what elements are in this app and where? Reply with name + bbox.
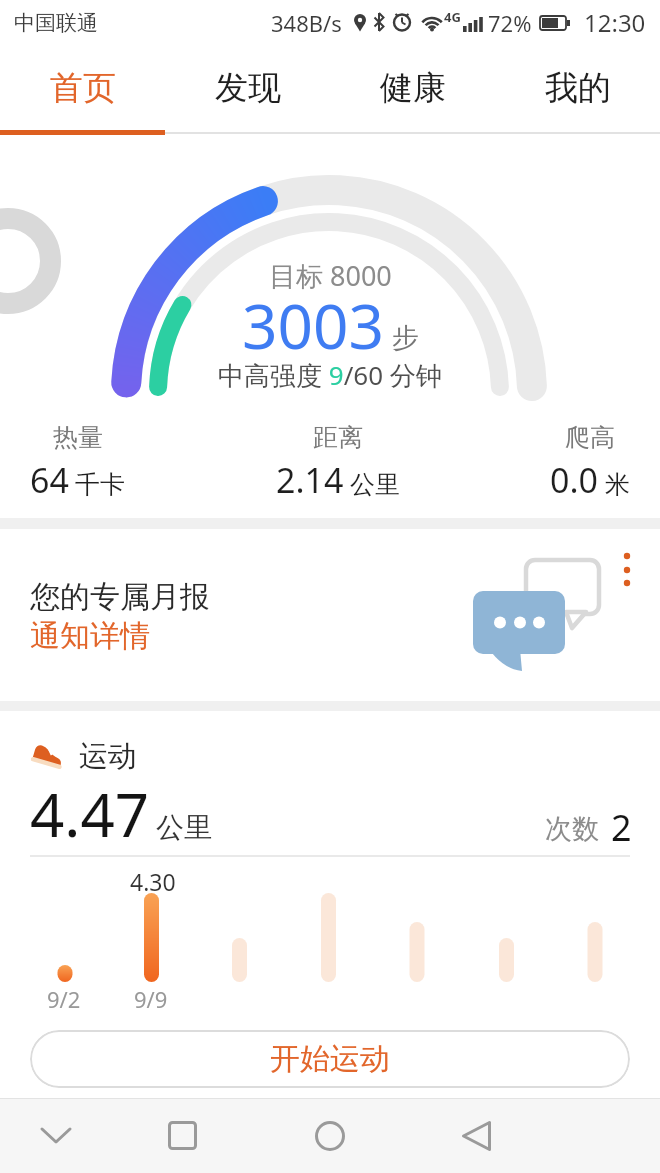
staticText: 公里 [156,810,212,845]
staticText: 距离 [313,422,363,453]
staticText: 4.47 [30,773,150,855]
button[interactable] [152,1098,212,1173]
staticText: 4G [444,8,461,26]
staticText: 运动 [79,738,137,775]
staticText: 2 [611,803,632,852]
button[interactable] [446,1098,506,1173]
button[interactable]: 开始运动 [30,1030,630,1088]
button[interactable]: 您的专属月报 [0,529,660,701]
button[interactable] [300,1098,360,1173]
staticText: 步 [392,321,419,355]
staticText: 健康 [380,67,446,109]
staticText: 次数 [545,812,599,846]
staticText: 4.30 [130,866,176,897]
staticText: 公里 [350,469,400,500]
staticText: 348B/s [271,8,342,38]
button[interactable] [26,1098,86,1173]
staticText: 我的 [545,67,611,109]
button[interactable]: 我的 [495,45,660,130]
staticText: 64 [30,457,69,503]
button[interactable]: 发现 [165,45,330,130]
staticText: 9/2 [47,984,81,1014]
staticText: 您的专属月报 [30,578,210,616]
staticText: 开始运动 [270,1040,390,1078]
staticText: 12:30 [584,6,646,39]
staticText: 3003 [242,283,384,367]
button[interactable]: 健康 [330,45,495,130]
staticText: 米 [605,469,630,500]
staticText: 热量 [53,422,103,453]
staticText: 千卡 [75,469,125,500]
staticText: 爬高 [565,422,615,453]
staticText: 9/9 [134,984,168,1014]
staticText: 首页 [50,67,116,109]
staticText: 中高强度 9/60 分钟 [218,357,442,393]
button[interactable]: 通知详情 [30,617,150,655]
staticText: 0.0 [550,457,599,503]
staticText: 中国联通 [14,10,98,36]
staticText: 目标 8000 [269,257,392,294]
button[interactable]: 首页 [0,45,165,130]
staticText: 72% [488,8,532,38]
staticText: 2.14 [276,457,344,503]
staticText: 发现 [215,67,281,109]
